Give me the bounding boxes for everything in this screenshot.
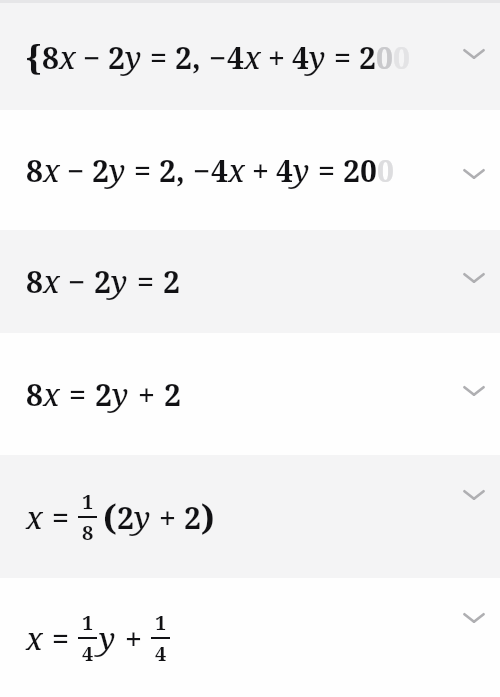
staticText: y [125, 37, 142, 78]
button[interactable]: x [0, 455, 500, 578]
staticText: 4 [276, 150, 293, 191]
staticText: 0 [376, 37, 393, 78]
staticText: y [293, 150, 310, 191]
staticText: x [26, 618, 43, 659]
staticText: x [43, 150, 60, 191]
button[interactable]: x [0, 578, 500, 697]
staticText: 4 [211, 150, 228, 191]
staticText: 2 [163, 261, 180, 302]
staticText: 1 [82, 609, 94, 636]
staticText: − [83, 37, 101, 78]
staticText: 8 [82, 519, 94, 546]
staticText: 8 [26, 261, 43, 302]
staticText: , [176, 150, 185, 191]
staticText: 8 [26, 374, 43, 415]
staticText: , [192, 37, 201, 78]
staticText: 1 [155, 609, 167, 636]
staticText: y [99, 618, 116, 659]
staticText: y [112, 374, 129, 415]
staticText: y [111, 261, 128, 302]
staticText: 4 [227, 37, 244, 78]
staticText: = [318, 150, 335, 191]
staticText: 2 [108, 37, 125, 78]
button[interactable]: 8 [0, 110, 500, 230]
staticText: 2 [184, 497, 201, 538]
staticText: = [150, 37, 167, 78]
button[interactable]: Expand step 5 [455, 481, 493, 507]
staticText: 2 [159, 150, 176, 191]
staticText: 4 [155, 640, 167, 667]
staticText: 2 [359, 37, 376, 78]
staticText: 2 [117, 497, 134, 538]
staticText: ) [201, 494, 215, 540]
staticText: ( [103, 494, 117, 540]
staticText: 8 [42, 37, 59, 78]
staticText: + [252, 150, 269, 191]
staticText: x [26, 497, 43, 538]
staticText: 0 [377, 150, 394, 191]
staticText: 2 [164, 374, 181, 415]
staticText: 4 [82, 640, 94, 667]
staticText: + [125, 618, 142, 659]
staticText: 1 [82, 488, 94, 515]
staticText: 0 [360, 150, 377, 191]
staticText: = [137, 261, 154, 302]
staticText: = [134, 150, 151, 191]
button[interactable]: Expand step 2 [455, 160, 493, 186]
staticText: − [193, 150, 211, 191]
staticText: = [334, 37, 351, 78]
button[interactable]: 8 [0, 230, 500, 333]
button[interactable]: Expand step 4 [455, 377, 493, 403]
staticText: x [59, 37, 76, 78]
staticText: { [26, 34, 42, 80]
staticText: 8 [26, 150, 43, 191]
staticText: − [209, 37, 227, 78]
staticText: 2 [92, 150, 109, 191]
staticText: y [109, 150, 126, 191]
button[interactable]: 8 [0, 333, 500, 455]
staticText: − [67, 150, 85, 191]
staticText: 2 [94, 261, 111, 302]
button[interactable]: Expand step 1 [455, 40, 493, 66]
staticText: 2 [175, 37, 192, 78]
staticText: x [43, 261, 60, 302]
staticText: x [43, 374, 60, 415]
staticText: − [68, 261, 86, 302]
staticText: x [244, 37, 261, 78]
staticText: 2 [95, 374, 112, 415]
staticText: = [52, 618, 69, 659]
staticText: 0 [393, 37, 410, 78]
staticText: 2 [343, 150, 360, 191]
staticText: y [309, 37, 326, 78]
staticText: + [268, 37, 285, 78]
staticText: + [138, 374, 155, 415]
button[interactable]: Expand step 6 [455, 604, 493, 630]
button[interactable]: Expand step 3 [455, 264, 493, 290]
staticText: = [69, 374, 86, 415]
button[interactable]: { [0, 3, 500, 110]
staticText: x [228, 150, 245, 191]
staticText: = [52, 497, 69, 538]
staticText: + [159, 497, 176, 538]
staticText: y [134, 497, 151, 538]
staticText: 4 [292, 37, 309, 78]
